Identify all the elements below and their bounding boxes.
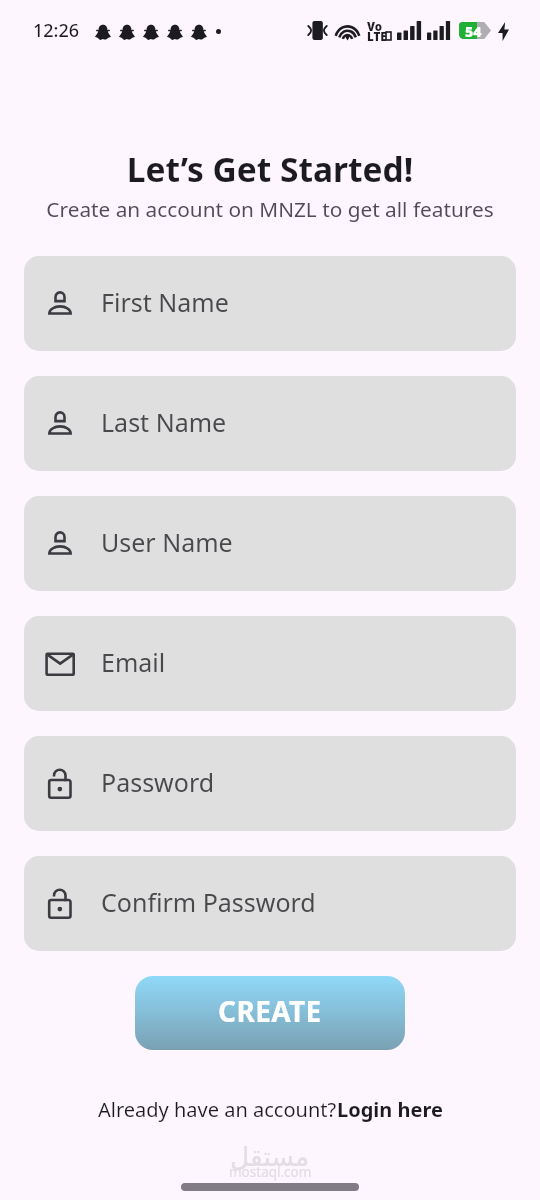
staticText: Password	[101, 765, 215, 799]
staticText: 12:26	[33, 18, 80, 43]
staticText: CREATE	[218, 992, 322, 1030]
button[interactable]: User Name	[24, 496, 516, 591]
staticText: User Name	[101, 525, 233, 559]
staticText: Create an account on MNZL to get all fea…	[0, 195, 540, 223]
button[interactable]: Password	[24, 736, 516, 831]
staticText: Vo	[367, 19, 383, 35]
button[interactable]: Confirm Password	[24, 856, 516, 951]
staticText: Let’s Get Started!	[0, 146, 540, 192]
button[interactable]: Email	[24, 616, 516, 711]
staticText: Email	[101, 645, 166, 679]
staticText: Last Name	[101, 405, 227, 439]
button[interactable]: First Name	[24, 256, 516, 351]
staticText: Already have an account?	[98, 1096, 337, 1123]
staticText: 54	[465, 22, 482, 39]
staticText: First Name	[101, 285, 229, 319]
button[interactable]: Login here	[337, 1096, 443, 1123]
staticText: mostaql.com	[229, 1163, 312, 1181]
button[interactable]: CREATE	[135, 976, 405, 1050]
staticText: Confirm Password	[101, 885, 316, 919]
staticText: مستقل	[230, 1141, 310, 1172]
button[interactable]: Last Name	[24, 376, 516, 471]
staticText: LTE	[367, 29, 387, 45]
